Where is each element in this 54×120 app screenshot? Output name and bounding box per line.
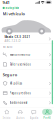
staticText: Taller y servicios [10, 63, 31, 66]
button[interactable]: Pagos y recibos [0, 88, 54, 98]
button[interactable]: Mantenimiento [0, 50, 54, 59]
staticText: Mi auto [3, 45, 13, 49]
staticText: Ayuda [30, 116, 38, 120]
button[interactable]: Asistencia vial [0, 98, 54, 107]
button[interactable]: Mazda CX-5 2021 [0, 34, 54, 43]
button[interactable]: Inicio [0, 108, 13, 120]
staticText: 9:41 [3, 0, 10, 5]
staticText: Mi póliza [10, 82, 22, 85]
staticText: Mi vehículo [3, 11, 25, 16]
staticText: Autos [16, 116, 24, 120]
button[interactable]: Mi póliza [0, 79, 54, 88]
button[interactable]: Taller y servicios [0, 60, 54, 69]
button[interactable]: Perfil [40, 108, 54, 120]
staticText: Inicio [3, 116, 11, 120]
staticText: Seguro [3, 72, 17, 77]
staticText: Mazda CX-5 2021 [4, 35, 30, 39]
button[interactable]: Autos [13, 108, 27, 120]
staticText: Perfil [43, 116, 51, 120]
staticText: autopista [5, 6, 19, 10]
button[interactable]: Ayuda [27, 108, 40, 120]
staticText: Asistencia vial [10, 101, 28, 104]
staticText: ABC-123-D [4, 39, 20, 43]
staticText: Pagos y recibos [10, 91, 31, 95]
staticText: Mantenimiento [10, 53, 31, 56]
